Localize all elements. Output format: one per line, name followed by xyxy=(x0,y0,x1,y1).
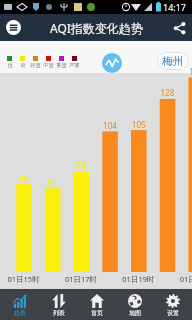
button[interactable]: Menu xyxy=(6,20,21,35)
staticText: 重度 xyxy=(56,62,67,69)
button[interactable]: 梅州 xyxy=(157,52,189,70)
staticText: 趋势 xyxy=(14,309,26,317)
button[interactable]: 趋势 xyxy=(0,289,39,320)
staticText: 梅州 xyxy=(162,54,184,68)
button[interactable]: Chart view xyxy=(102,53,122,73)
button[interactable]: 地图 xyxy=(116,289,154,320)
staticText: 14:17 xyxy=(163,1,187,13)
button[interactable]: Share xyxy=(172,20,187,35)
button[interactable]: 列表 xyxy=(39,289,78,320)
staticText: 良 xyxy=(20,62,26,69)
staticText: 严重 xyxy=(69,62,80,69)
staticText: 地图 xyxy=(129,309,141,317)
button[interactable]: 设置 xyxy=(154,289,192,320)
staticText: AQI指数变化趋势 xyxy=(50,20,143,36)
staticText: 列表 xyxy=(53,309,65,317)
staticText: 轻度 xyxy=(30,62,41,69)
staticText: 优 xyxy=(7,62,13,69)
staticText: 设置 xyxy=(167,309,179,317)
button[interactable]: 首页 xyxy=(78,289,116,320)
staticText: 首页 xyxy=(91,309,103,317)
staticText: 中度 xyxy=(43,62,54,69)
